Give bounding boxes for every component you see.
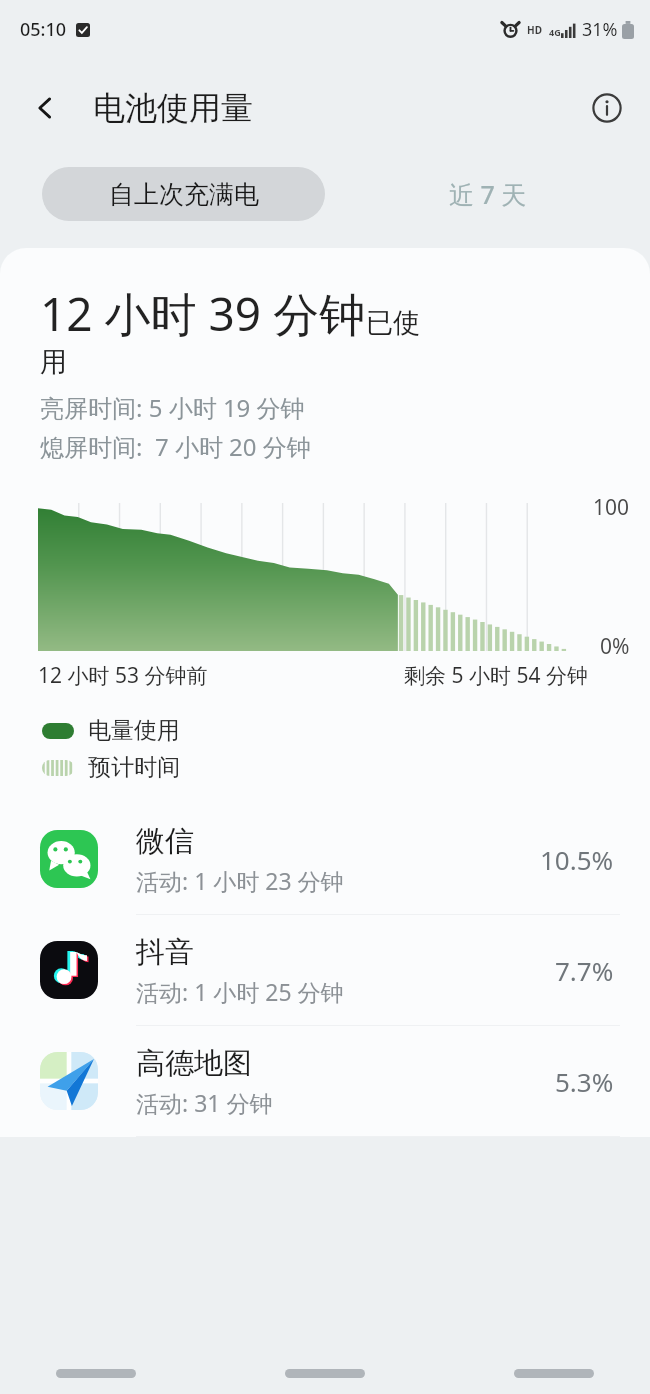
staticText: 已使: [366, 306, 420, 340]
button[interactable]: Home: [285, 1369, 365, 1378]
staticText: 4G: [549, 26, 561, 38]
staticText: 31%: [582, 17, 618, 42]
staticText: 5.3%: [555, 1064, 614, 1099]
staticText: 12 小时 39 分钟: [40, 282, 366, 345]
button[interactable]: Information: [580, 81, 634, 135]
staticText: 抖音: [136, 934, 194, 971]
staticText: 电池使用量: [93, 88, 253, 128]
staticText: 高德地图: [136, 1045, 252, 1082]
button[interactable]: 近 7 天: [325, 167, 650, 221]
staticText: 近 7 天: [449, 177, 527, 211]
staticText: 用: [40, 345, 67, 379]
button[interactable]: 自上次充满电: [42, 167, 325, 221]
staticText: 0%: [600, 632, 630, 661]
staticText: 10.5%: [540, 842, 614, 877]
staticText: 熄屏时间: 7 小时 20 分钟: [40, 430, 311, 463]
staticText: 05:10: [20, 17, 67, 42]
button[interactable]: Back: [18, 81, 72, 135]
staticText: 活动: 31 分钟: [136, 1087, 273, 1118]
staticText: 100: [593, 493, 630, 522]
button[interactable]: Back: [514, 1369, 594, 1378]
staticText: 7.7%: [555, 953, 614, 988]
button[interactable]: 微信: [0, 804, 650, 914]
button[interactable]: 高德地图: [0, 1026, 650, 1136]
button[interactable]: 抖音: [0, 915, 650, 1025]
button[interactable]: Recents: [56, 1369, 136, 1378]
staticText: 预计时间: [88, 753, 180, 782]
staticText: 电量使用: [88, 716, 180, 745]
staticText: 活动: 1 小时 23 分钟: [136, 865, 344, 896]
staticText: 亮屏时间: 5 小时 19 分钟: [40, 391, 305, 424]
staticText: 剩余 5 小时 54 分钟: [404, 661, 588, 690]
staticText: 活动: 1 小时 25 分钟: [136, 976, 344, 1007]
staticText: 微信: [136, 823, 194, 860]
staticText: 自上次充满电: [109, 179, 259, 210]
staticText: HD: [527, 23, 542, 37]
staticText: 12 小时 53 分钟前: [38, 661, 208, 690]
